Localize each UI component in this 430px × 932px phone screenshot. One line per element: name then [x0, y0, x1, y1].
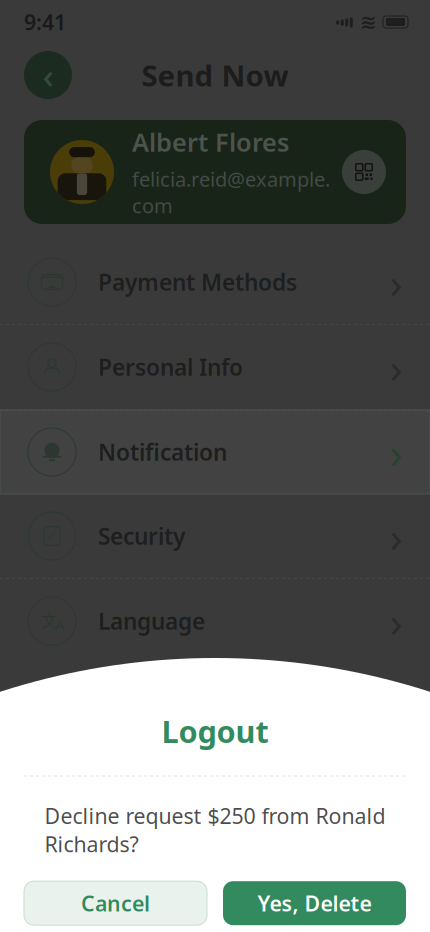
- staticText: Language: [98, 606, 205, 636]
- staticText: Cancel: [81, 889, 150, 917]
- staticText: A: [55, 614, 64, 634]
- staticText: Security: [98, 521, 185, 551]
- staticText: ≋: [360, 11, 377, 33]
- button[interactable]: Payment Methods: [0, 240, 430, 324]
- button[interactable]: 文: [0, 579, 430, 663]
- button[interactable]: ✓: [0, 494, 430, 578]
- staticText: Albert Flores: [132, 125, 289, 159]
- button[interactable]: Yes, Delete: [223, 881, 406, 925]
- staticText: Personal Info: [98, 352, 243, 382]
- staticText: Decline request $250 from Ronald Richard…: [44, 801, 385, 858]
- staticText: Send Now: [141, 55, 288, 94]
- staticText: Payment Methods: [98, 267, 297, 297]
- button[interactable]: Back: [24, 51, 72, 99]
- staticText: ›: [389, 424, 402, 480]
- staticText: felicia.reid@example.com: [132, 166, 330, 219]
- staticText: ›: [389, 339, 402, 395]
- staticText: ›: [389, 593, 402, 649]
- button[interactable]: Show QR code: [342, 150, 386, 194]
- staticText: ›: [389, 508, 402, 564]
- staticText: ›: [389, 254, 402, 310]
- staticText: Notification: [98, 437, 227, 467]
- staticText: Yes, Delete: [257, 889, 371, 917]
- button[interactable]: Personal Info: [0, 325, 430, 409]
- button[interactable]: Notification: [0, 410, 430, 494]
- staticText: 9:41: [24, 8, 66, 36]
- staticText: 文: [41, 610, 58, 631]
- staticText: Logout: [161, 711, 268, 751]
- staticText: ‹: [42, 52, 53, 98]
- button[interactable]: Cancel: [24, 881, 207, 925]
